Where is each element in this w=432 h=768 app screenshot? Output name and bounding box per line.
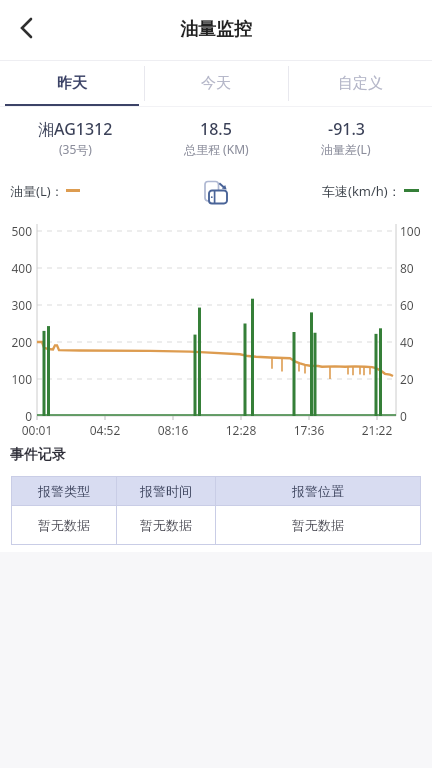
staticText: 12:28 [217,422,265,438]
staticText: 报警类型 [38,483,90,499]
staticText: 20 [400,371,432,387]
staticText: 车速(km/h)： [322,182,401,200]
staticText: 60 [400,297,432,313]
staticText: 事件记录 [10,446,66,464]
staticText: 200 [2,334,32,350]
staticText: 300 [2,297,32,313]
button[interactable] [198,176,234,208]
staticText: 湘AG1312 [38,118,113,140]
staticText: 报警时间 [140,483,192,499]
staticText: 500 [2,223,32,239]
staticText: 80 [400,260,432,276]
staticText: 0 [400,408,432,424]
staticText: -91.3 [328,118,365,140]
staticText: 00:01 [13,422,61,438]
button[interactable] [6,7,50,51]
staticText: 18.5 [200,118,232,140]
staticText: 100 [400,223,432,239]
staticText: 油量(L)： [10,182,64,200]
staticText: 昨天 [57,74,87,93]
staticText: 油量差(L) [321,141,371,157]
button[interactable]: 昨天 [0,61,144,106]
staticText: 报警位置 [292,483,344,499]
staticText: 今天 [201,74,231,93]
staticText: 21:22 [353,422,401,438]
staticText: 自定义 [338,74,383,93]
staticText: 总里程 (KM) [184,141,249,157]
staticText: (35号) [59,141,92,157]
staticText: 暂无数据 [140,517,192,533]
staticText: 0 [2,408,32,424]
staticText: 暂无数据 [292,517,344,533]
staticText: 暂无数据 [38,517,90,533]
staticText: 08:16 [149,422,197,438]
button[interactable]: 今天 [144,61,288,106]
staticText: 40 [400,334,432,350]
staticText: 油量监控 [180,18,252,41]
button[interactable]: 自定义 [288,61,432,106]
staticText: 400 [2,260,32,276]
staticText: 100 [2,371,32,387]
staticText: 17:36 [285,422,333,438]
staticText: 04:52 [81,422,129,438]
